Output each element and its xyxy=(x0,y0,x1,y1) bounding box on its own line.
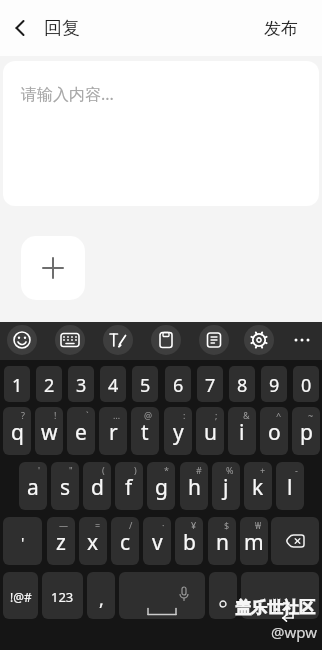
button[interactable] xyxy=(290,325,314,355)
button[interactable]: 0 xyxy=(293,366,319,402)
button[interactable]: y xyxy=(164,407,192,455)
staticText: ' xyxy=(21,532,25,552)
staticText: 9 xyxy=(269,373,280,398)
button[interactable]: f xyxy=(115,462,143,510)
staticText: ` xyxy=(86,409,89,421)
staticText: e xyxy=(75,418,87,447)
staticText: 盖乐世社区 xyxy=(235,598,315,618)
button[interactable]: b xyxy=(175,517,203,565)
staticText: = xyxy=(95,519,101,531)
staticText: / xyxy=(129,519,133,531)
staticText: 回复 xyxy=(44,17,80,40)
button[interactable]: 2 xyxy=(36,366,62,402)
staticText: 0 xyxy=(301,373,312,398)
button[interactable]: u xyxy=(196,407,224,455)
staticText: g xyxy=(155,473,168,502)
button[interactable]: v xyxy=(143,517,171,565)
button[interactable]: t xyxy=(131,407,159,455)
button[interactable] xyxy=(55,325,85,355)
staticText: ' xyxy=(38,464,41,476)
staticText: n xyxy=(216,528,229,557)
button[interactable]: 123 xyxy=(42,572,83,619)
staticText: ? xyxy=(21,409,25,421)
staticText: b xyxy=(183,528,196,557)
staticText: ^ xyxy=(276,409,282,421)
button[interactable]: !@# xyxy=(3,572,38,619)
button[interactable]: j xyxy=(212,462,240,510)
button[interactable]: 7 xyxy=(197,366,223,402)
staticText: t xyxy=(141,418,149,447)
staticText: v xyxy=(152,528,163,557)
button[interactable] xyxy=(7,325,37,355)
button[interactable]: , xyxy=(87,572,115,619)
staticText: + xyxy=(260,464,266,476)
staticText: " xyxy=(69,464,73,476)
button[interactable]: w xyxy=(35,407,63,455)
staticText: !@# xyxy=(10,589,32,605)
button[interactable]: x xyxy=(79,517,107,565)
button[interactable]: 3 xyxy=(68,366,94,402)
staticText: 4 xyxy=(108,373,119,398)
button[interactable] xyxy=(151,325,181,355)
button[interactable] xyxy=(103,325,133,355)
button[interactable] xyxy=(199,325,229,355)
button[interactable] xyxy=(241,572,319,619)
staticText: & xyxy=(243,409,250,421)
staticText: 发布 xyxy=(264,18,298,39)
button[interactable]: e xyxy=(67,407,95,455)
button[interactable]: c xyxy=(111,517,139,565)
button[interactable]: d xyxy=(83,462,111,510)
button[interactable]: 4 xyxy=(100,366,126,402)
button[interactable]: z xyxy=(47,517,75,565)
button[interactable]: s xyxy=(51,462,79,510)
button[interactable]: l xyxy=(276,462,304,510)
staticText: ( xyxy=(102,464,105,476)
button[interactable] xyxy=(21,236,85,300)
button[interactable]: 8 xyxy=(229,366,255,402)
button[interactable]: 发布 xyxy=(264,18,298,39)
staticText: y xyxy=(173,418,184,447)
staticText: ~ xyxy=(308,409,314,421)
button[interactable] xyxy=(8,16,32,40)
staticText: 请输入内容... xyxy=(21,83,114,105)
button[interactable]: n xyxy=(208,517,236,565)
button[interactable] xyxy=(244,325,274,355)
button[interactable]: 请输入内容... xyxy=(3,61,319,206)
button[interactable]: g xyxy=(147,462,175,510)
staticText: % xyxy=(226,464,234,476)
staticText: 8 xyxy=(237,373,248,398)
staticText: @wpw xyxy=(271,622,317,642)
button[interactable]: o xyxy=(260,407,288,455)
staticText: 3 xyxy=(76,373,87,398)
staticText: r xyxy=(109,418,118,447)
button[interactable]: ' xyxy=(3,517,42,565)
staticText: · xyxy=(162,519,165,531)
staticText: - xyxy=(295,464,298,476)
button[interactable]: 6 xyxy=(165,366,191,402)
button[interactable]: 9 xyxy=(261,366,287,402)
staticText: j xyxy=(223,473,229,502)
button[interactable]: 5 xyxy=(132,366,158,402)
staticText: ₩ xyxy=(255,519,262,531)
button[interactable]: i xyxy=(228,407,256,455)
button[interactable]: q xyxy=(3,407,31,455)
staticText: f xyxy=(125,473,133,502)
staticText: w xyxy=(41,418,58,447)
button[interactable]: 1 xyxy=(4,366,30,402)
button[interactable]: k xyxy=(244,462,272,510)
staticText: a xyxy=(27,473,39,502)
button[interactable]: a xyxy=(19,462,47,510)
staticText: x xyxy=(87,528,99,557)
button[interactable]: m xyxy=(240,517,268,565)
button[interactable]: r xyxy=(99,407,127,455)
button[interactable] xyxy=(119,572,205,619)
staticText: z xyxy=(56,528,66,557)
staticText: ! xyxy=(54,409,57,421)
button[interactable]: h xyxy=(180,462,208,510)
staticText: — xyxy=(59,519,69,531)
staticText: i xyxy=(239,418,245,447)
button[interactable] xyxy=(209,572,237,619)
staticText: * xyxy=(164,464,169,476)
button[interactable] xyxy=(271,517,319,565)
button[interactable]: p xyxy=(292,407,320,455)
